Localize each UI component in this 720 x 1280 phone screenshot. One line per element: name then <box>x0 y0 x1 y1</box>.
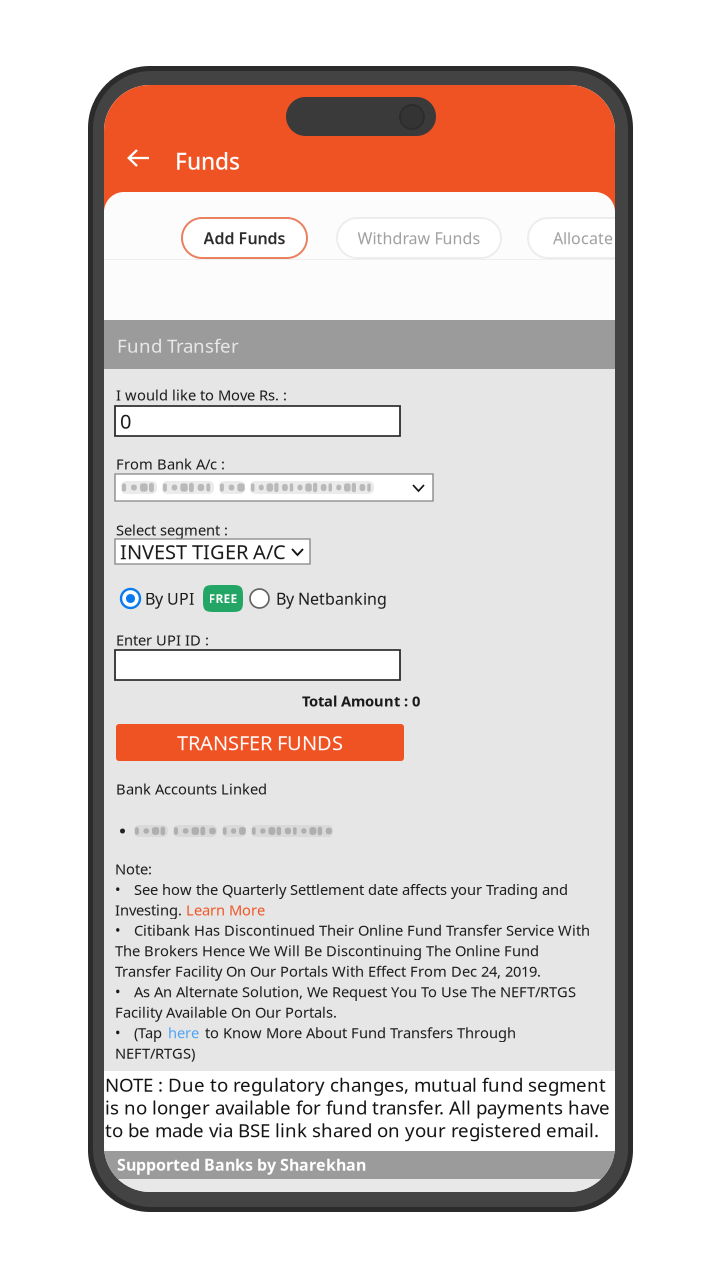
staticText: NEFT/RTGS) <box>115 1043 195 1063</box>
staticText: Citibank Has Discontinued Their Online F… <box>134 920 590 940</box>
staticText: NOTE : Due to regulatory changes, mutual… <box>105 1072 606 1097</box>
staticText: Transfer Facility On Our Portals With Ef… <box>115 961 541 981</box>
button[interactable]: Back <box>117 136 161 180</box>
staticText: TRANSFER FUNDS <box>177 729 343 756</box>
staticText: Investing. <box>115 900 182 919</box>
staticText: Funds <box>175 146 240 176</box>
staticText: Learn More <box>186 900 265 919</box>
button[interactable]: By UPI <box>121 588 194 609</box>
staticText: Total Amount : 0 <box>302 691 420 710</box>
staticText: Supported Banks by Sharekhan <box>117 1154 366 1175</box>
staticText: (Tap <box>134 1023 162 1042</box>
staticText: • <box>115 1023 121 1042</box>
button[interactable]: By Netbanking <box>250 588 387 609</box>
staticText: • <box>115 920 121 940</box>
staticText: here <box>168 1023 199 1042</box>
staticText: INVEST TIGER A/C <box>120 538 286 565</box>
staticText: Select segment : <box>116 520 228 539</box>
button[interactable]: Withdraw Funds <box>337 218 501 258</box>
staticText: The Brokers Hence We Will Be Discontinui… <box>115 941 539 960</box>
button[interactable]: TRANSFER FUNDS <box>116 724 404 761</box>
staticText: Fund Transfer <box>117 333 239 358</box>
button[interactable]: INVEST TIGER A/C <box>115 539 310 564</box>
staticText: Withdraw Funds <box>357 227 480 249</box>
staticText: to Know More About Fund Transfers Throug… <box>205 1023 516 1042</box>
staticText: Allocate Funds <box>553 227 663 249</box>
button[interactable]: Add Funds <box>182 218 307 258</box>
staticText: Facility Available On Our Portals. <box>115 1002 337 1022</box>
staticText: As An Alternate Solution, We Request You… <box>134 982 576 1001</box>
staticText: to be made via BSE link shared on your r… <box>105 1118 599 1142</box>
staticText: I would like to Move Rs. : <box>116 385 287 404</box>
staticText: From Bank A/c : <box>116 454 225 473</box>
button[interactable]: Learn More <box>186 900 265 919</box>
staticText: FREE <box>208 590 237 606</box>
button[interactable]: here <box>168 1023 199 1042</box>
staticText: Note: <box>115 859 152 878</box>
staticText: • <box>115 879 121 899</box>
staticText: • <box>115 982 121 1001</box>
staticText: See how the Quarterly Settlement date af… <box>134 879 568 899</box>
staticText: By Netbanking <box>276 588 387 609</box>
staticText: 0 <box>120 408 131 434</box>
staticText: is no longer available for fund transfer… <box>105 1095 610 1120</box>
button[interactable]: From Bank Account <box>115 474 433 501</box>
staticText: Add Funds <box>203 227 285 249</box>
button[interactable]: Allocate Funds <box>528 218 688 258</box>
staticText: By UPI <box>145 588 194 609</box>
staticText: Enter UPI ID : <box>116 630 209 649</box>
staticText: Bank Accounts Linked <box>116 779 267 798</box>
